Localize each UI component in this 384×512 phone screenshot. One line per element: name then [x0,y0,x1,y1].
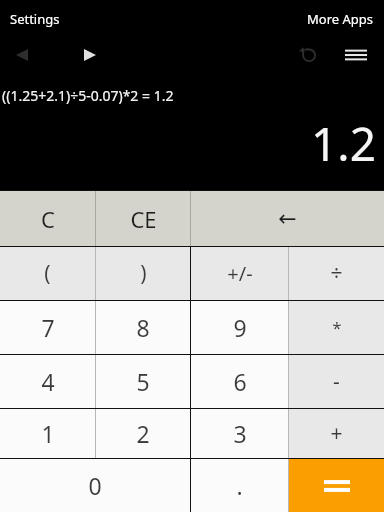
staticText: ( [44,259,51,288]
staticText: 1 [41,418,55,449]
staticText: 0 [88,470,102,501]
button[interactable]: 2 [96,409,190,458]
button[interactable]: More Apps [305,8,376,30]
staticText: 2 [136,418,150,449]
button[interactable]: 9 [191,301,288,354]
button[interactable]: Undo [284,38,328,72]
button[interactable]: 0 [0,459,190,512]
button[interactable]: Menu [334,38,378,72]
staticText: 3 [233,418,247,449]
staticText: 4 [41,366,55,397]
staticText: Settings [10,10,60,28]
staticText: * [332,316,342,339]
button[interactable]: 3 [191,409,288,458]
button[interactable]: 1 [0,409,95,458]
button[interactable]: . [191,459,288,512]
button[interactable]: 6 [191,355,288,408]
button[interactable]: Previous [0,39,44,71]
staticText: 7 [41,312,55,343]
staticText: 1.2 [311,112,376,175]
button[interactable]: ) [96,247,190,300]
button[interactable]: * [289,301,384,354]
button[interactable]: 4 [0,355,95,408]
staticText: 8 [136,312,150,343]
staticText: ((1.25+2.1)÷5-0.07)*2 = 1.2 [2,86,174,105]
button[interactable]: 8 [96,301,190,354]
staticText: +/- [227,260,253,287]
staticText: ) [140,259,147,288]
button[interactable]: Equals [289,459,384,512]
staticText: 9 [233,312,247,343]
staticText: + [330,419,343,448]
staticText: ÷ [330,259,343,288]
staticText: . [236,470,243,501]
button[interactable]: 5 [96,355,190,408]
button[interactable]: Settings [8,8,62,30]
staticText: C [41,204,55,234]
button[interactable]: + [289,409,384,458]
staticText: More Apps [307,10,374,28]
staticText: 5 [136,366,150,397]
button[interactable]: - [289,355,384,408]
button[interactable]: 7 [0,301,95,354]
staticText: ← [278,206,297,232]
button[interactable]: ÷ [289,247,384,300]
staticText: 6 [233,366,247,397]
button[interactable]: Backspace [191,191,384,246]
staticText: CE [130,204,157,234]
button[interactable]: ( [0,247,95,300]
button[interactable]: C [0,191,95,246]
button[interactable]: +/- [191,247,288,300]
button[interactable]: Next [68,39,112,71]
button[interactable]: CE [96,191,190,246]
staticText: - [333,367,340,396]
